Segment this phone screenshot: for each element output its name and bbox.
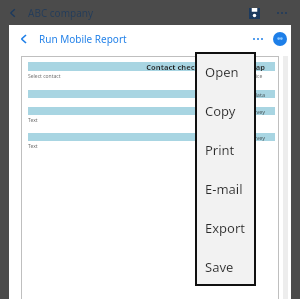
staticText: Run Mobile Report: [39, 32, 127, 46]
staticText: Text: [28, 143, 38, 150]
staticText: Satisfaction survey: [216, 134, 265, 141]
button[interactable]: More options: [247, 28, 269, 50]
button[interactable]: E-mail: [195, 169, 256, 208]
staticText: Print: [205, 141, 235, 159]
staticText: Financial survey: [223, 108, 265, 115]
staticText: Save: [205, 258, 234, 276]
button[interactable]: More options: [270, 1, 294, 25]
staticText: Copy: [205, 102, 236, 120]
staticText: Contact checkup with data map: [146, 62, 265, 71]
staticText: Text: [28, 117, 38, 124]
button[interactable]: Export: [195, 208, 256, 247]
staticText: Open: [205, 63, 239, 81]
button[interactable]: Save: [242, 1, 266, 25]
button[interactable]: Back: [13, 28, 35, 50]
staticText: ABC company: [28, 6, 94, 20]
staticText: Update personal data: [209, 91, 265, 98]
staticText: E-mail: [205, 180, 243, 198]
button[interactable]: Save: [195, 247, 256, 286]
button[interactable]: Account: [273, 32, 287, 46]
staticText: Black, Beatrice: [228, 73, 263, 80]
staticText: Select contact: [28, 73, 61, 80]
button[interactable]: Copy: [195, 91, 256, 130]
button[interactable]: Open: [195, 52, 256, 91]
button[interactable]: Back: [0, 0, 26, 25]
button[interactable]: Print: [195, 130, 256, 169]
staticText: Export: [205, 219, 246, 237]
